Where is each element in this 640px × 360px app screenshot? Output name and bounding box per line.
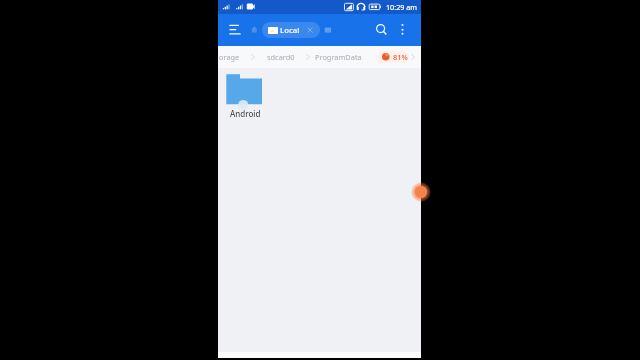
- staticText: 81%: [393, 52, 408, 62]
- button[interactable]: orage: [219, 52, 240, 62]
- button[interactable]: Add: [411, 182, 431, 202]
- button[interactable]: ProgramData: [315, 52, 362, 62]
- staticText: Local: [280, 25, 300, 36]
- button[interactable]: Search: [371, 20, 391, 40]
- button[interactable]: Add tab: [322, 24, 334, 36]
- button[interactable]: More options: [396, 22, 412, 38]
- button[interactable]: sdcard0: [267, 52, 295, 62]
- button[interactable]: Local: [262, 22, 320, 38]
- staticText: 10:29 am: [386, 2, 417, 12]
- button[interactable]: Menu: [224, 20, 244, 40]
- button[interactable]: 81%: [376, 51, 409, 63]
- button[interactable]: Android: [219, 68, 270, 121]
- button[interactable]: Home: [248, 23, 262, 37]
- staticText: Android: [230, 108, 261, 119]
